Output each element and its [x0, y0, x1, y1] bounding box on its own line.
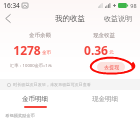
- staticText: 98: [130, 2, 137, 9]
- staticText: 现金明细: [92, 95, 118, 103]
- staticText: 金币明细: [22, 95, 48, 103]
- staticText: 元: [109, 50, 114, 56]
- staticText: 金币: [42, 50, 51, 56]
- staticText: 金币余额: [29, 32, 51, 39]
- staticText: 收益说明: [104, 14, 132, 23]
- button[interactable]: 看视频奖励金币: [0, 111, 140, 120]
- staticText: 去提现: [104, 64, 119, 70]
- staticText: 时长收益次日发放，未发放收益可次日查看: [13, 82, 91, 87]
- staticText: 1278: [13, 42, 41, 58]
- button[interactable]: 收益说明: [101, 12, 140, 25]
- button[interactable]: 去提现: [97, 62, 125, 72]
- staticText: 16:34: [3, 1, 20, 10]
- button[interactable]: Back: [0, 11, 16, 26]
- staticText: 我的收益: [55, 14, 85, 23]
- staticText: 现金收益: [93, 32, 115, 39]
- staticText: 0.36: [84, 42, 108, 58]
- staticText: 汇率：10000金币=1元: [10, 63, 52, 69]
- staticText: 看视频奖励金币: [5, 113, 35, 118]
- button[interactable]: 现金明细: [70, 90, 140, 109]
- button[interactable]: 金币明细: [0, 90, 70, 109]
